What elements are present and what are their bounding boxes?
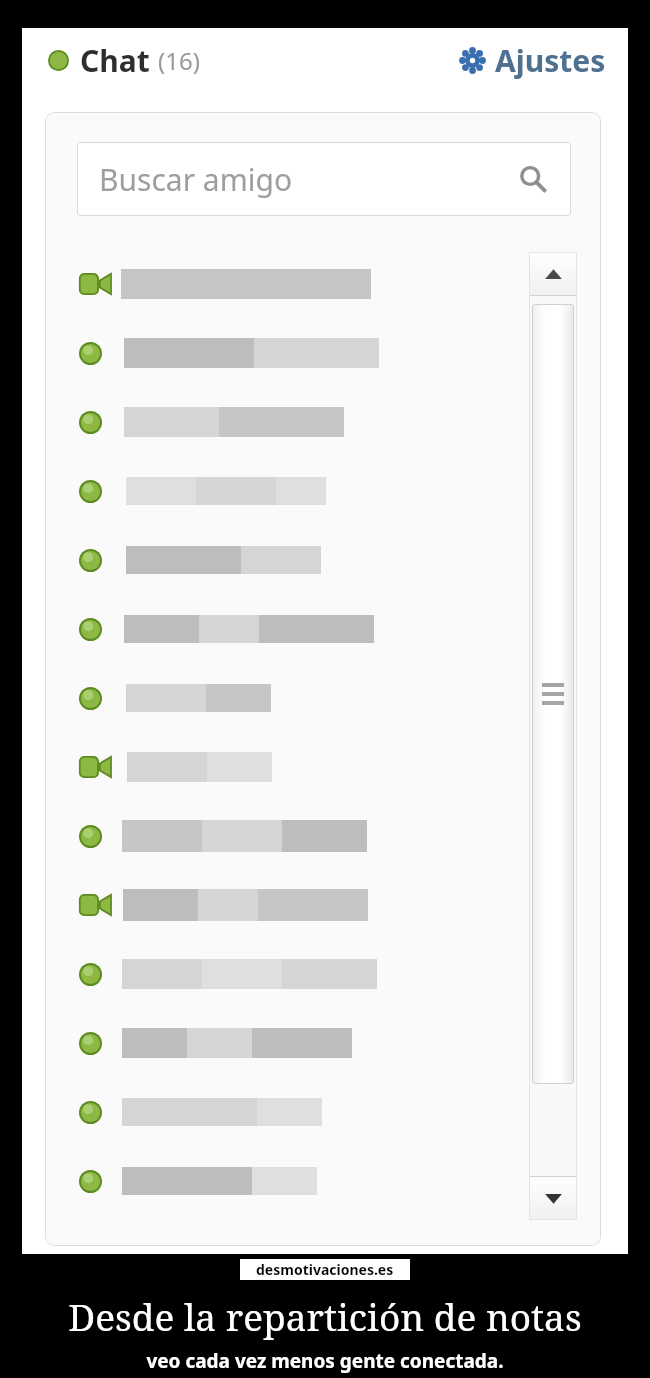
staticText: veo cada vez menos gente conectada. (0, 1348, 650, 1374)
button[interactable] (45, 810, 601, 862)
button[interactable] (45, 603, 601, 655)
button[interactable] (45, 465, 601, 517)
button[interactable] (45, 948, 601, 1000)
staticText: Buscar amigo (99, 159, 293, 200)
other: Buscar (517, 164, 547, 194)
button[interactable]: Buscar amigo (77, 142, 571, 216)
other: Ajustes (460, 48, 485, 73)
button[interactable]: Desplazar arriba (529, 252, 577, 296)
button[interactable] (45, 327, 601, 379)
staticText: (16) (158, 44, 200, 77)
button[interactable] (45, 672, 601, 724)
button[interactable]: Desplazar abajo (529, 1176, 577, 1220)
button[interactable]: Videollamada (45, 879, 601, 931)
staticText: desmotivaciones.es (256, 1260, 394, 1279)
button[interactable] (45, 534, 601, 586)
other: Videollamada (79, 756, 111, 778)
button[interactable] (45, 1155, 601, 1207)
button[interactable]: Chat (48, 40, 200, 81)
staticText: Ajustes (495, 40, 606, 81)
button[interactable] (45, 396, 601, 448)
button[interactable] (45, 1017, 601, 1069)
staticText: Chat (80, 40, 150, 81)
button[interactable]: Videollamada (45, 741, 601, 793)
button[interactable]: Videollamada (45, 258, 601, 310)
button[interactable]: Ajustes (460, 40, 606, 81)
other: Videollamada (79, 273, 111, 295)
other: Videollamada (79, 894, 111, 916)
button[interactable]: Barra de desplazamiento (532, 304, 574, 1084)
button[interactable] (45, 1086, 601, 1138)
staticText: Desde la repartición de notas (0, 1291, 650, 1341)
